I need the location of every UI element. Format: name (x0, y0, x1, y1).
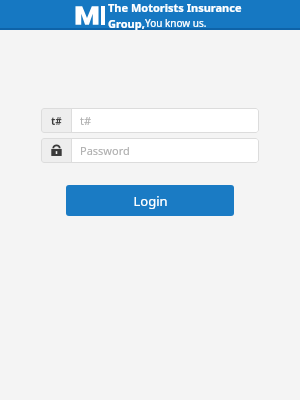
staticText: Group, (108, 16, 145, 30)
button[interactable]: Password (41, 138, 259, 163)
staticText: t# (51, 114, 62, 128)
staticText: You know us. (145, 16, 207, 30)
staticText: Login (133, 192, 168, 210)
button[interactable]: Login (66, 185, 234, 216)
button[interactable]: Username (41, 108, 259, 133)
staticText: t# (80, 113, 92, 128)
staticText: Password (80, 143, 130, 158)
staticText: The Motorists Insurance (108, 0, 242, 15)
